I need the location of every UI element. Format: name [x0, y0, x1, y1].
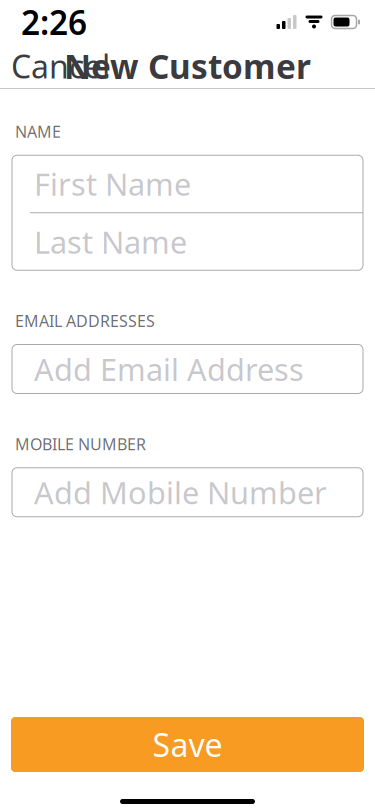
staticText: Save: [152, 723, 222, 766]
button[interactable]: Save: [11, 717, 364, 772]
staticText: Cancel: [11, 45, 110, 87]
button[interactable]: Cancel: [0, 37, 121, 95]
staticText: 2:26: [21, 0, 87, 44]
staticText: Last Name: [34, 221, 187, 262]
staticText: First Name: [34, 163, 191, 204]
staticText: NAME: [15, 121, 61, 142]
button[interactable]: Add Mobile Number: [12, 468, 363, 517]
staticText: New Customer: [64, 44, 311, 88]
staticText: MOBILE NUMBER: [15, 433, 146, 455]
staticText: Add Mobile Number: [34, 472, 327, 513]
button[interactable]: Add Email Address: [12, 344, 363, 393]
button[interactable]: Last Name: [12, 213, 363, 270]
staticText: Add Email Address: [34, 349, 304, 389]
staticText: EMAIL ADDRESSES: [15, 310, 155, 331]
button[interactable]: First Name: [12, 155, 363, 212]
